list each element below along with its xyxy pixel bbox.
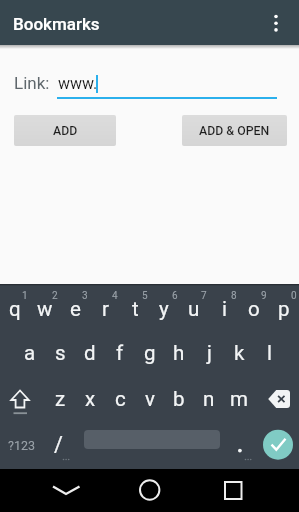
- button[interactable]: [164, 330, 194, 376]
- button[interactable]: ADD & OPEN: [182, 115, 287, 146]
- button[interactable]: [45, 330, 75, 376]
- staticText: ADD & OPEN: [199, 124, 270, 138]
- staticText: f: [116, 341, 124, 365]
- staticText: n: [203, 387, 215, 411]
- staticText: y: [159, 297, 169, 321]
- staticText: x: [85, 387, 96, 411]
- staticText: 8: [231, 290, 237, 302]
- staticText: k: [234, 341, 245, 365]
- staticText: ?123: [8, 438, 35, 453]
- button[interactable]: [194, 377, 224, 423]
- button[interactable]: [30, 284, 60, 330]
- staticText: b: [173, 387, 185, 411]
- button[interactable]: [194, 330, 224, 376]
- button[interactable]: [120, 284, 150, 330]
- staticText: t: [132, 297, 139, 321]
- button[interactable]: [90, 284, 120, 330]
- staticText: h: [173, 341, 185, 365]
- button[interactable]: [224, 377, 254, 423]
- button[interactable]: [15, 330, 45, 376]
- staticText: z: [55, 387, 66, 411]
- staticText: l: [267, 341, 272, 365]
- staticText: 9: [261, 290, 267, 302]
- staticText: s: [55, 341, 66, 365]
- staticText: w: [37, 297, 53, 321]
- button[interactable]: [164, 377, 194, 423]
- button[interactable]: [0, 377, 45, 423]
- button[interactable]: [225, 423, 255, 469]
- staticText: m: [230, 387, 248, 411]
- button[interactable]: [269, 284, 299, 330]
- staticText: p: [278, 297, 290, 321]
- button[interactable]: [239, 284, 269, 330]
- staticText: 4: [112, 290, 118, 302]
- staticText: q: [9, 297, 21, 321]
- staticText: Bookmarks: [13, 14, 100, 34]
- staticText: 7: [201, 290, 207, 302]
- staticText: e: [70, 297, 81, 321]
- button[interactable]: [254, 423, 299, 469]
- button[interactable]: [105, 330, 135, 376]
- staticText: i: [222, 297, 227, 321]
- staticText: r: [102, 297, 109, 321]
- button[interactable]: [45, 377, 75, 423]
- button[interactable]: [255, 0, 299, 45]
- button[interactable]: [36, 469, 92, 512]
- staticText: 0: [291, 290, 297, 302]
- staticText: 1: [22, 290, 28, 302]
- button[interactable]: [254, 330, 284, 376]
- button[interactable]: [209, 284, 239, 330]
- staticText: o: [248, 297, 260, 321]
- button[interactable]: [122, 469, 178, 512]
- staticText: c: [115, 387, 126, 411]
- button[interactable]: [205, 469, 261, 512]
- staticText: j: [207, 341, 212, 365]
- button[interactable]: [75, 330, 105, 376]
- button[interactable]: www.: [57, 66, 277, 100]
- button[interactable]: [224, 330, 254, 376]
- button[interactable]: [135, 377, 165, 423]
- staticText: 2: [52, 290, 58, 302]
- staticText: 3: [82, 290, 88, 302]
- button[interactable]: [179, 284, 209, 330]
- staticText: u: [188, 297, 200, 321]
- staticText: d: [84, 341, 96, 365]
- staticText: www.: [58, 74, 98, 93]
- button[interactable]: [43, 423, 73, 469]
- button[interactable]: [149, 284, 179, 330]
- staticText: 6: [172, 290, 178, 302]
- staticText: ADD: [53, 124, 78, 138]
- staticText: a: [24, 341, 36, 365]
- button[interactable]: [135, 330, 165, 376]
- button[interactable]: ADD: [14, 115, 116, 146]
- staticText: /: [54, 432, 63, 457]
- staticText: 5: [142, 290, 148, 302]
- staticText: v: [145, 387, 155, 411]
- button[interactable]: [105, 377, 135, 423]
- button[interactable]: [0, 284, 30, 330]
- button[interactable]: [254, 377, 299, 423]
- staticText: Link:: [14, 73, 50, 93]
- button[interactable]: [60, 284, 90, 330]
- button[interactable]: [75, 377, 105, 423]
- button[interactable]: [0, 423, 44, 469]
- staticText: g: [144, 341, 156, 365]
